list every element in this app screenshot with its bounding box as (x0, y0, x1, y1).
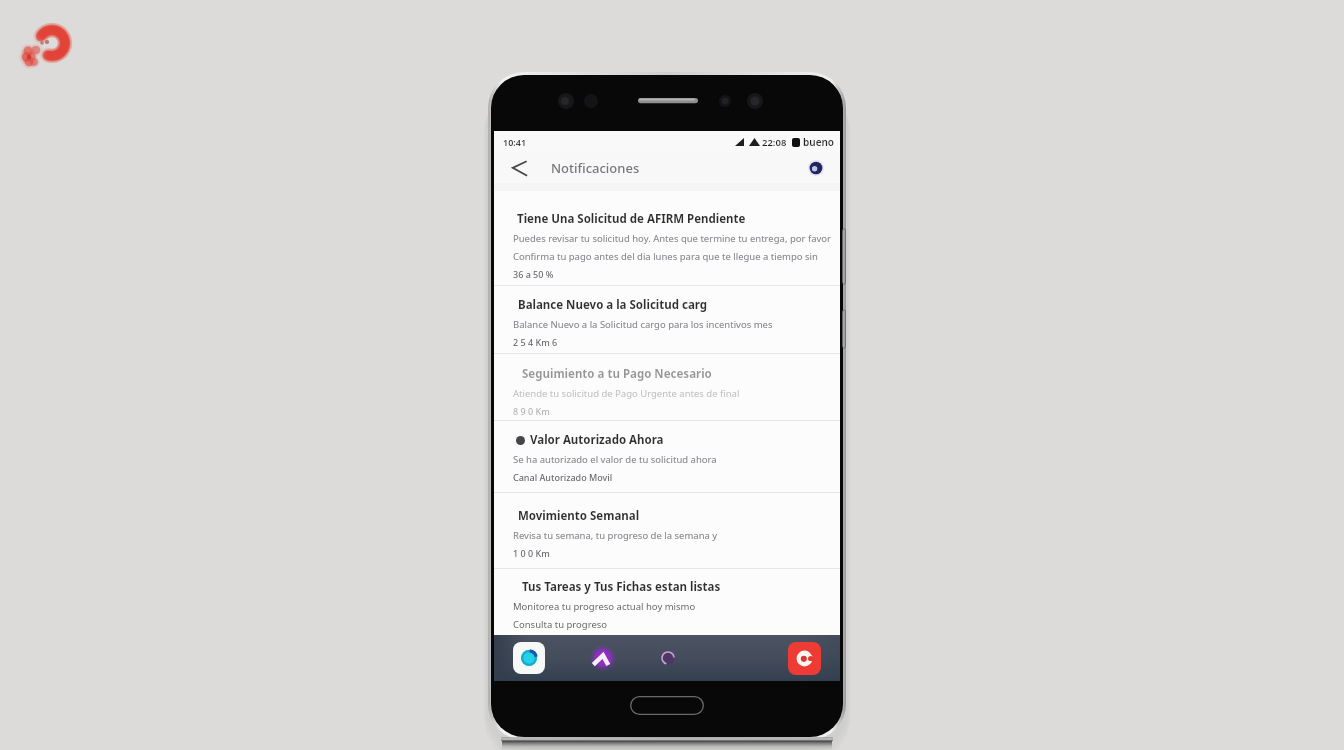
staticText: bueno (803, 135, 835, 149)
staticText: 10:41 (503, 136, 527, 148)
button[interactable]: Seguimiento a tu Pago Necesario (494, 354, 840, 420)
staticText: Canal Autorizado Movil (513, 471, 613, 483)
staticText: Puedes revisar tu solicitud hoy. Antes q… (513, 232, 836, 245)
staticText: Consulta tu progreso (513, 618, 608, 631)
button[interactable]: Valor Autorizado Ahora (494, 421, 840, 492)
staticText: Balance Nuevo a la Solicitud carg (518, 297, 708, 313)
staticText: Valor Autorizado Ahora (530, 432, 664, 448)
button[interactable]: Tus Tareas y Tus Fichas estan listas (494, 569, 840, 635)
button[interactable]: Share (589, 644, 617, 672)
staticText: Atiende tu solicitud de Pago Urgente ant… (513, 387, 740, 400)
button[interactable]: Account (798, 153, 834, 183)
staticText: Confirma tu pago antes del dia lunes par… (513, 250, 836, 263)
staticText: 2 5 4 Km 6 (513, 336, 558, 348)
staticText: 22:08 (762, 136, 787, 149)
button[interactable]: Open app (788, 642, 821, 675)
button[interactable]: Browser (513, 642, 545, 674)
staticText: Movimiento Semanal (518, 508, 640, 524)
staticText: 36 a 50 % (513, 268, 554, 280)
staticText: 1 0 0 Km (513, 547, 550, 559)
staticText: Monitorea tu progreso actual hoy mismo (513, 600, 696, 613)
staticText: Tiene Una Solicitud de AFIRM Pendiente (517, 211, 746, 227)
button[interactable]: Back (508, 153, 530, 183)
button[interactable]: Recent apps (656, 646, 680, 670)
staticText: Tus Tareas y Tus Fichas estan listas (522, 579, 721, 595)
staticText: Notificaciones (551, 159, 640, 177)
button[interactable]: Movimiento Semanal (494, 493, 840, 568)
staticText: 8 9 0 Km (513, 405, 550, 417)
staticText: Seguimiento a tu Pago Necesario (522, 366, 712, 382)
button[interactable]: Balance Nuevo a la Solicitud carg (494, 286, 840, 353)
staticText: Se ha autorizado el valor de tu solicitu… (513, 453, 717, 466)
button[interactable]: Tiene Una Solicitud de AFIRM Pendiente (494, 191, 840, 285)
staticText: Revisa tu semana, tu progreso de la sema… (513, 529, 718, 542)
staticText: Balance Nuevo a la Solicitud cargo para … (513, 318, 773, 331)
